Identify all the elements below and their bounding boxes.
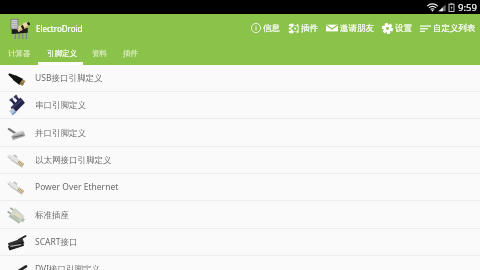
button[interactable]: 自定义列表	[416, 14, 480, 42]
button[interactable]: 并口引脚定义	[0, 120, 480, 147]
staticText: 并口引脚定义	[35, 128, 86, 139]
staticText: Power Over Ethernet	[35, 181, 119, 193]
other: 自定义列表	[420, 23, 431, 34]
button[interactable]: 资料	[84, 42, 114, 65]
staticText: 信息	[263, 23, 280, 34]
button[interactable]: USB接口引脚定义	[0, 65, 480, 92]
button[interactable]: 计算器	[0, 42, 39, 65]
button[interactable]: 以太网接口引脚定义	[0, 147, 480, 174]
staticText: 自定义列表	[433, 23, 476, 34]
staticText: 资料	[92, 49, 107, 58]
button[interactable]: 插件	[114, 42, 147, 65]
button[interactable]: 引脚定义	[39, 42, 84, 65]
staticText: USB接口引脚定义	[35, 72, 103, 84]
other: 插件	[288, 23, 299, 34]
staticText: 设置	[395, 23, 412, 34]
staticText: ElectroDroid	[36, 23, 83, 34]
button[interactable]: DVI接口引脚定义	[0, 256, 480, 270]
staticText: 邀请朋友	[340, 23, 374, 34]
staticText: SCART接口	[35, 236, 78, 248]
staticText: 标准插座	[35, 210, 69, 221]
staticText: 以太网接口引脚定义	[35, 155, 112, 166]
staticText: 串口引脚定义	[35, 100, 86, 111]
button[interactable]: 串口引脚定义	[0, 92, 480, 119]
button[interactable]: Power Over Ethernet	[0, 174, 480, 201]
button[interactable]: 标准插座	[0, 202, 480, 229]
button[interactable]: 插件	[284, 14, 322, 42]
button[interactable]: 设置	[378, 14, 416, 42]
staticText: 插件	[301, 23, 318, 34]
staticText: 引脚定义	[47, 49, 77, 58]
staticText: 插件	[123, 49, 138, 58]
staticText: DVI接口引脚定义	[35, 263, 101, 270]
other: 信息	[251, 23, 261, 33]
button[interactable]: SCART接口	[0, 229, 480, 256]
button[interactable]: 邀请朋友	[322, 14, 378, 42]
button[interactable]: 信息	[247, 14, 284, 42]
staticText: 9:59	[458, 1, 477, 14]
staticText: 计算器	[8, 49, 31, 58]
other: 邀请朋友	[326, 22, 338, 34]
other: 设置	[382, 23, 393, 34]
